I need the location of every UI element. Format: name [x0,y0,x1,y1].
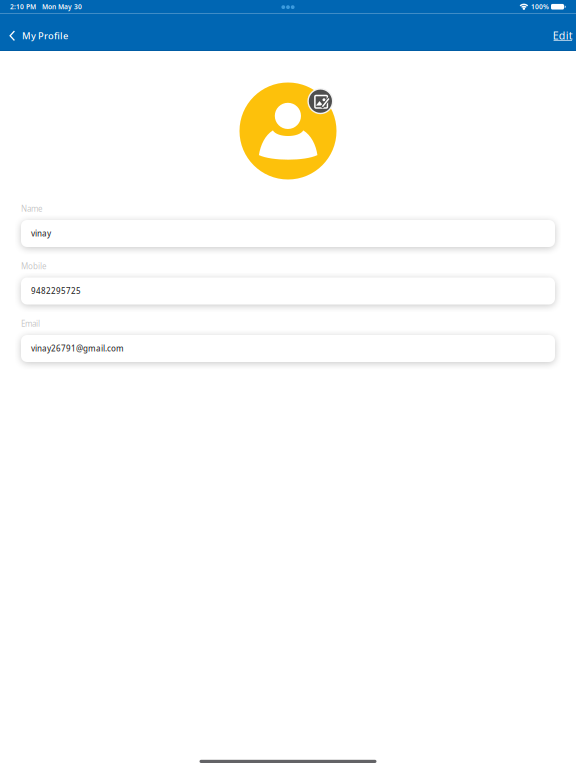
staticText: 100% [531,2,549,11]
button[interactable]: Change profile photo [239,82,336,179]
button[interactable]: Edit [553,13,576,51]
staticText: Mobile [21,261,47,271]
staticText: vinay [31,228,51,239]
staticText: Edit [553,28,573,42]
staticText: 9482295725 [31,286,81,296]
staticText: My Profile [22,30,68,42]
staticText: Email [21,318,40,329]
staticText: vinay26791@gmail.com [31,343,124,354]
staticText: 2:10 PM [10,2,36,11]
button[interactable]: My Profile [0,13,74,51]
staticText: Mon May 30 [42,2,82,11]
staticText: Name [21,203,43,214]
